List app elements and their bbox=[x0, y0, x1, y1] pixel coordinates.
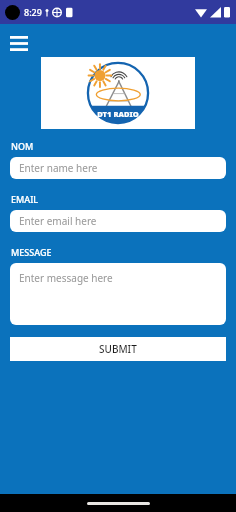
button[interactable]: SUBMIT bbox=[10, 337, 226, 361]
button[interactable]: Open navigation menu bbox=[7, 32, 35, 54]
staticText: Enter email here bbox=[19, 214, 97, 228]
staticText: DT1 RADIO bbox=[97, 109, 139, 119]
button[interactable]: Enter name here bbox=[10, 157, 226, 179]
staticText: Enter name here bbox=[19, 161, 98, 175]
staticText: NOM bbox=[11, 140, 34, 152]
staticText: SUBMIT bbox=[99, 342, 137, 356]
button[interactable]: Enter email here bbox=[10, 210, 226, 232]
staticText: EMAIL bbox=[11, 193, 39, 205]
staticText: MESSAGE bbox=[11, 246, 52, 258]
button[interactable]: Enter message here bbox=[10, 263, 226, 325]
staticText: 8:29 bbox=[24, 6, 42, 18]
staticText: Enter message here bbox=[19, 271, 113, 285]
